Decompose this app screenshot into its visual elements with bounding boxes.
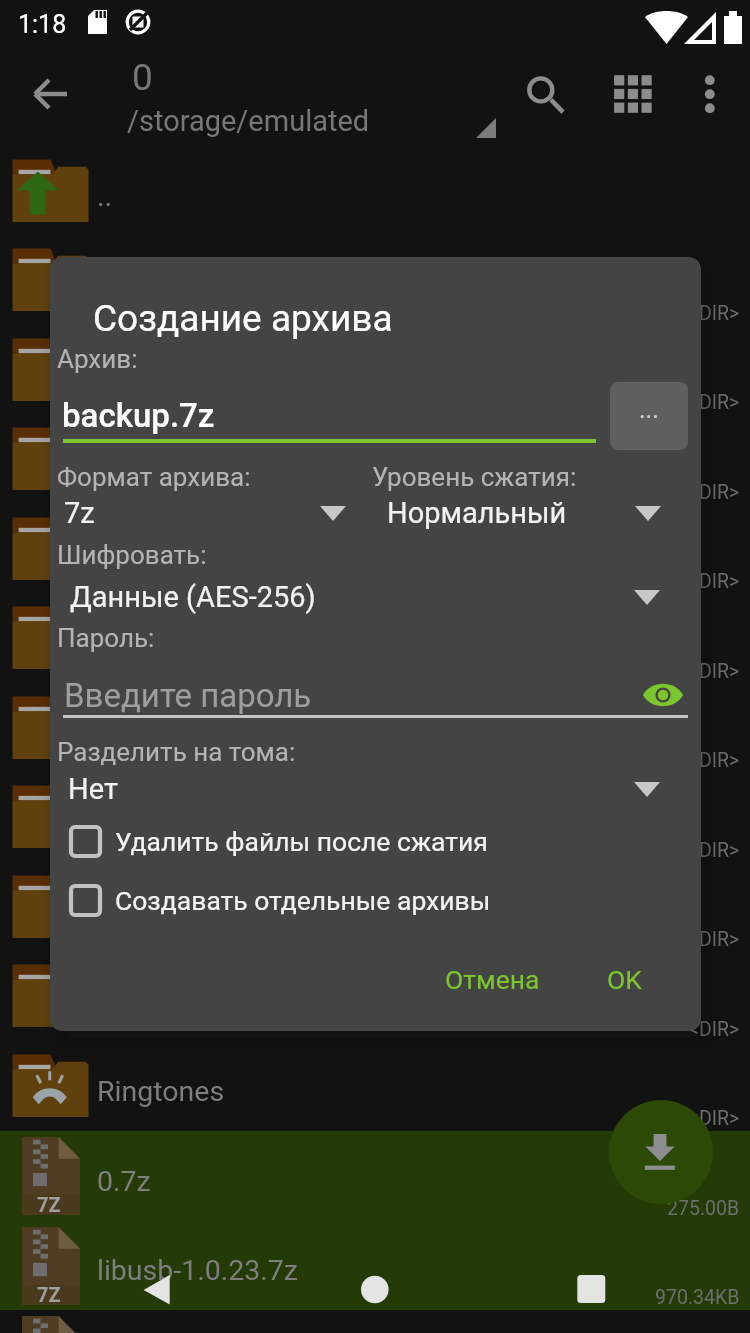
button[interactable]: .. bbox=[0, 147, 750, 236]
button[interactable]: Нет bbox=[56, 767, 660, 811]
button[interactable]: Pictures bbox=[0, 952, 750, 1042]
button[interactable]: Music bbox=[0, 773, 750, 863]
button[interactable]: Отмена bbox=[432, 948, 552, 1010]
staticText: Нет bbox=[68, 772, 118, 806]
staticText: OK bbox=[607, 964, 642, 995]
staticText: Нормальный bbox=[387, 496, 567, 530]
staticText: <DIR> bbox=[689, 749, 740, 772]
button[interactable]: Download bbox=[0, 594, 750, 684]
staticText: Documents bbox=[97, 538, 243, 571]
button[interactable]: 7Z bbox=[0, 1221, 750, 1310]
staticText: Уровень сжатия: bbox=[372, 462, 577, 492]
button[interactable]: ... bbox=[610, 382, 688, 450]
button[interactable]: OK bbox=[588, 948, 660, 1010]
staticText: 1:18 bbox=[18, 10, 67, 39]
staticText: backup.7z bbox=[62, 396, 215, 435]
staticText: <DIR> bbox=[689, 928, 740, 951]
staticText: <DIR> bbox=[689, 1018, 740, 1041]
button[interactable]: DCIM bbox=[0, 415, 750, 505]
staticText: Создание архива bbox=[93, 297, 393, 340]
staticText: 0 bbox=[132, 56, 153, 99]
staticText: Notifications bbox=[97, 896, 260, 929]
staticText: Android bbox=[97, 359, 197, 392]
button[interactable]: Android bbox=[0, 326, 750, 415]
button[interactable]: Удалить файлы после сжатия bbox=[61, 813, 621, 869]
button[interactable]: Back bbox=[120, 1258, 190, 1322]
button[interactable]: Extract archive bbox=[609, 1100, 713, 1204]
staticText: <DIR> bbox=[689, 570, 740, 593]
staticText: <DIR> bbox=[689, 391, 740, 414]
staticText: Movies bbox=[97, 717, 189, 750]
button[interactable]: Создавать отдельные архивы bbox=[61, 872, 621, 928]
staticText: 7Z bbox=[37, 1283, 61, 1306]
staticText: Формат архива: bbox=[57, 462, 251, 492]
staticText: Шифровать: bbox=[57, 540, 207, 570]
staticText: Создавать отдельные архивы bbox=[115, 885, 491, 916]
staticText: <DIR> bbox=[689, 660, 740, 683]
button[interactable]: Movies bbox=[0, 684, 750, 773]
button[interactable]: More options bbox=[670, 54, 750, 134]
staticText: Данные (AES-256) bbox=[70, 580, 316, 614]
button[interactable]: Ringtones bbox=[0, 1042, 750, 1131]
staticText: 7z bbox=[64, 496, 95, 530]
staticText: Пароль: bbox=[57, 623, 155, 653]
button[interactable]: 7z bbox=[56, 491, 346, 535]
button[interactable]: Данные (AES-256) bbox=[56, 575, 660, 619]
button[interactable]: Search bbox=[501, 50, 581, 130]
button[interactable]: Change view bbox=[586, 56, 666, 136]
button[interactable]: Documents bbox=[0, 505, 750, 594]
staticText: DCIM bbox=[97, 449, 167, 482]
button[interactable]: Home bbox=[340, 1258, 410, 1322]
staticText: 275.00B bbox=[667, 1197, 740, 1220]
staticText: <DIR> bbox=[689, 481, 740, 504]
staticText: .. bbox=[97, 180, 113, 213]
staticText: Введите пароль bbox=[64, 676, 312, 715]
button[interactable]: Back bbox=[11, 54, 91, 134]
staticText: <DIR> bbox=[689, 302, 740, 325]
staticText: /storage/emulated bbox=[127, 104, 370, 138]
staticText: Архив: bbox=[57, 344, 138, 374]
staticText: Разделить на тома: bbox=[57, 737, 296, 767]
button[interactable]: Recent apps bbox=[556, 1258, 626, 1322]
staticText: <DIR> bbox=[689, 1107, 740, 1130]
staticText: <DIR> bbox=[689, 839, 740, 862]
staticText: 0.7z bbox=[97, 1165, 151, 1198]
button[interactable]: 7Z bbox=[0, 1310, 750, 1333]
staticText: 970.34KB bbox=[655, 1286, 740, 1309]
staticText: libusb-1.0.23.7z bbox=[97, 1254, 298, 1287]
button[interactable]: Нормальный bbox=[372, 491, 661, 535]
button[interactable]: Alarms bbox=[0, 236, 750, 326]
button[interactable]: Show password bbox=[638, 670, 688, 720]
staticText: 7Z bbox=[37, 1193, 61, 1216]
staticText: Download bbox=[97, 628, 224, 661]
staticText: ... bbox=[639, 395, 659, 424]
button[interactable]: Notifications bbox=[0, 863, 750, 952]
staticText: Отмена bbox=[445, 964, 540, 995]
staticText: Ringtones bbox=[97, 1075, 225, 1108]
button[interactable]: 7Z bbox=[0, 1131, 750, 1221]
staticText: Удалить файлы после сжатия bbox=[115, 826, 488, 857]
staticText: Music bbox=[97, 807, 175, 840]
